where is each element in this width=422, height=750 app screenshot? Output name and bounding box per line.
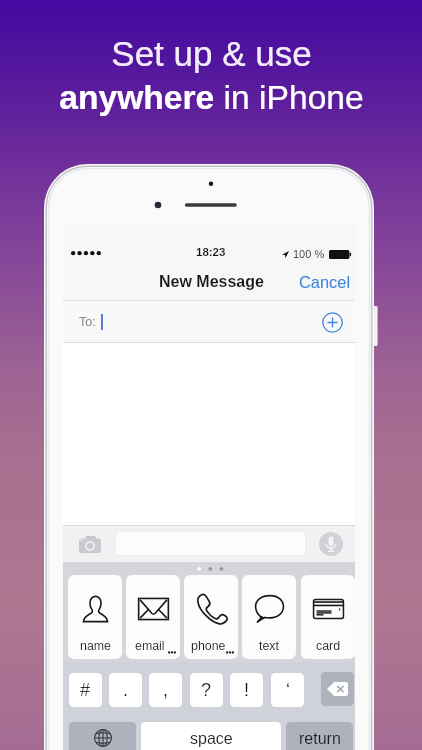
button[interactable]: . (109, 673, 142, 707)
staticText: ‘ (286, 680, 290, 700)
button[interactable]: return (286, 722, 353, 750)
staticText: New Message (159, 273, 264, 291)
button[interactable]: Cancel (292, 265, 355, 299)
staticText: , (163, 680, 169, 700)
staticText: name (80, 639, 111, 653)
staticText: text (259, 639, 279, 653)
staticText: 100 % (293, 248, 325, 260)
button[interactable]: # (69, 673, 102, 707)
staticText: To: (79, 315, 96, 329)
staticText: anywhere in iPhone (59, 79, 364, 117)
staticText: # (80, 680, 91, 700)
button[interactable]: space (141, 722, 281, 750)
button[interactable]: , (149, 673, 182, 707)
staticText: . (123, 680, 129, 700)
button[interactable]: name (68, 575, 122, 659)
button[interactable]: Delete (321, 672, 354, 706)
button[interactable]: card (301, 575, 355, 659)
button[interactable]: Camera (79, 536, 101, 553)
button[interactable]: Switch keyboard (69, 722, 136, 750)
staticText: 18:23 (196, 246, 226, 259)
staticText: space (190, 730, 233, 748)
staticText: card (316, 639, 341, 653)
button[interactable]: ‘ (271, 673, 304, 707)
button[interactable]: ! (230, 673, 263, 707)
staticText: Set up & use (111, 34, 312, 73)
button[interactable]: ? (190, 673, 223, 707)
button[interactable]: Dictation (319, 532, 343, 556)
staticText: Cancel (299, 273, 351, 291)
staticText: ? (201, 680, 212, 700)
staticText: ! (244, 680, 250, 700)
staticText: email (135, 639, 165, 653)
button[interactable] (115, 531, 306, 556)
button[interactable]: Add recipient (322, 312, 343, 333)
staticText: return (299, 730, 341, 748)
button[interactable]: text (242, 575, 296, 659)
button[interactable]: phone (184, 575, 238, 659)
staticText: phone (191, 639, 226, 653)
button[interactable]: email (126, 575, 180, 659)
